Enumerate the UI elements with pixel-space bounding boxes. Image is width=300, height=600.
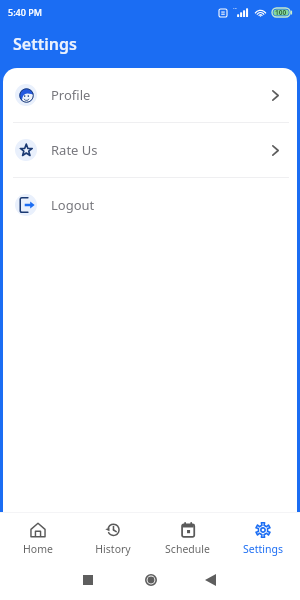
- staticText: Profile: [51, 86, 91, 104]
- staticText: 100: [275, 8, 287, 17]
- staticText: Logout: [51, 196, 95, 214]
- staticText: Home: [23, 542, 53, 556]
- button[interactable]: Settings: [225, 512, 300, 556]
- staticText: 5:40 PM: [8, 6, 42, 18]
- button[interactable]: Home: [0, 512, 75, 556]
- button[interactable]: Schedule: [150, 512, 225, 556]
- staticText: Settings: [13, 33, 77, 55]
- button[interactable]: History: [75, 512, 150, 556]
- button[interactable]: Logout: [3, 178, 297, 232]
- button[interactable]: Profile: [3, 68, 297, 122]
- staticText: Settings: [243, 542, 283, 556]
- staticText: History: [95, 542, 131, 556]
- staticText: Rate Us: [51, 141, 98, 159]
- staticText: Schedule: [165, 542, 210, 556]
- button[interactable]: Rate Us: [3, 123, 297, 177]
